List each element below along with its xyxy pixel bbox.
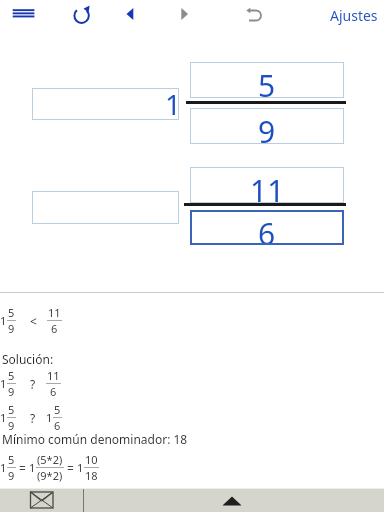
staticText: Ajustes <box>330 6 378 25</box>
staticText: (9*2) <box>37 468 63 483</box>
staticText: 1 <box>165 85 182 117</box>
button[interactable] <box>8 4 38 24</box>
staticText: 5 <box>8 452 15 467</box>
staticText: 1 <box>0 376 7 391</box>
button[interactable] <box>32 191 179 224</box>
button[interactable]: 5 <box>190 62 344 98</box>
staticText: 1 <box>77 460 84 475</box>
button[interactable] <box>243 3 267 27</box>
staticText: 6 <box>54 418 61 433</box>
staticText: = <box>67 460 74 476</box>
staticText: 18 <box>85 468 98 483</box>
staticText: 1 <box>29 460 36 475</box>
button[interactable]: 9 <box>190 108 344 144</box>
staticText: 9 <box>8 384 15 399</box>
button[interactable] <box>212 488 252 512</box>
staticText: 1 <box>0 410 7 425</box>
staticText: 6 <box>258 213 276 248</box>
button[interactable]: Ajustes <box>330 6 378 25</box>
staticText: Solución: <box>2 351 54 367</box>
staticText: 5 <box>8 368 15 383</box>
staticText: < <box>30 313 37 329</box>
staticText: ? <box>30 410 36 426</box>
staticText: 9 <box>8 321 15 336</box>
staticText: 9 <box>8 468 15 483</box>
button[interactable]: 1 <box>32 88 179 120</box>
staticText: 5 <box>258 65 276 101</box>
staticText: 1 <box>46 410 53 425</box>
staticText: 9 <box>258 111 276 147</box>
staticText: (5*2) <box>37 452 63 467</box>
staticText: 1 <box>0 460 7 475</box>
staticText: 1 <box>0 313 7 328</box>
staticText: = <box>19 460 26 476</box>
staticText: 5 <box>8 305 15 320</box>
button[interactable] <box>71 3 93 27</box>
button[interactable] <box>122 4 140 24</box>
staticText: 11 <box>47 368 60 383</box>
button[interactable] <box>24 488 60 512</box>
staticText: 9 <box>8 418 15 433</box>
staticText: 11 <box>48 305 61 320</box>
button[interactable]: 6 <box>190 210 344 245</box>
staticText: 6 <box>50 384 57 399</box>
staticText: 5 <box>8 402 15 417</box>
staticText: Mínimo común denominador: 18 <box>2 431 188 447</box>
button[interactable]: 11 <box>190 167 344 203</box>
staticText: 6 <box>51 321 58 336</box>
staticText: 11 <box>250 170 285 206</box>
staticText: 10 <box>85 452 98 467</box>
staticText: 5 <box>54 402 61 417</box>
staticText: ? <box>30 376 36 392</box>
button[interactable] <box>177 4 195 24</box>
